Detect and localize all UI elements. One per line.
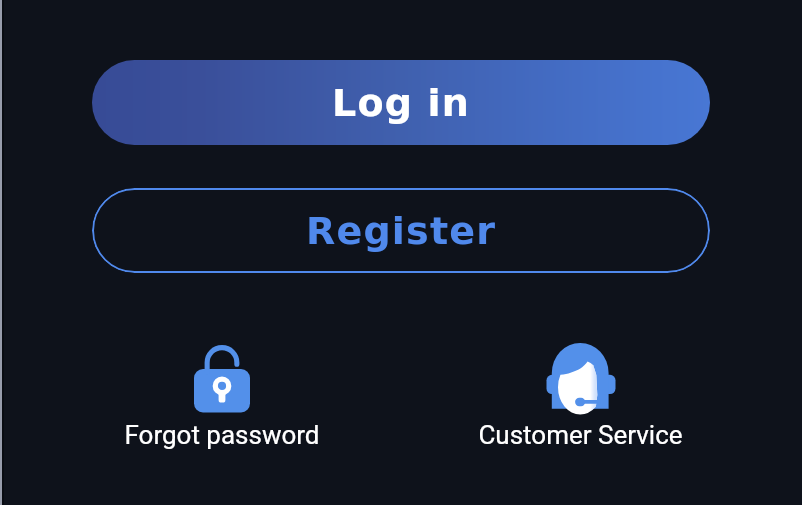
button[interactable]: Log in: [92, 60, 710, 145]
staticText: Register: [306, 209, 497, 253]
other: Customer Service: [546, 343, 616, 413]
staticText: Log in: [332, 81, 471, 125]
staticText: Customer Service: [478, 420, 683, 450]
other: Forgot password: [187, 343, 257, 413]
staticText: Forgot password: [124, 420, 320, 450]
button[interactable]: Register: [92, 188, 710, 273]
button[interactable]: Forgot password: [124, 343, 320, 450]
button[interactable]: Customer Service: [478, 343, 683, 450]
